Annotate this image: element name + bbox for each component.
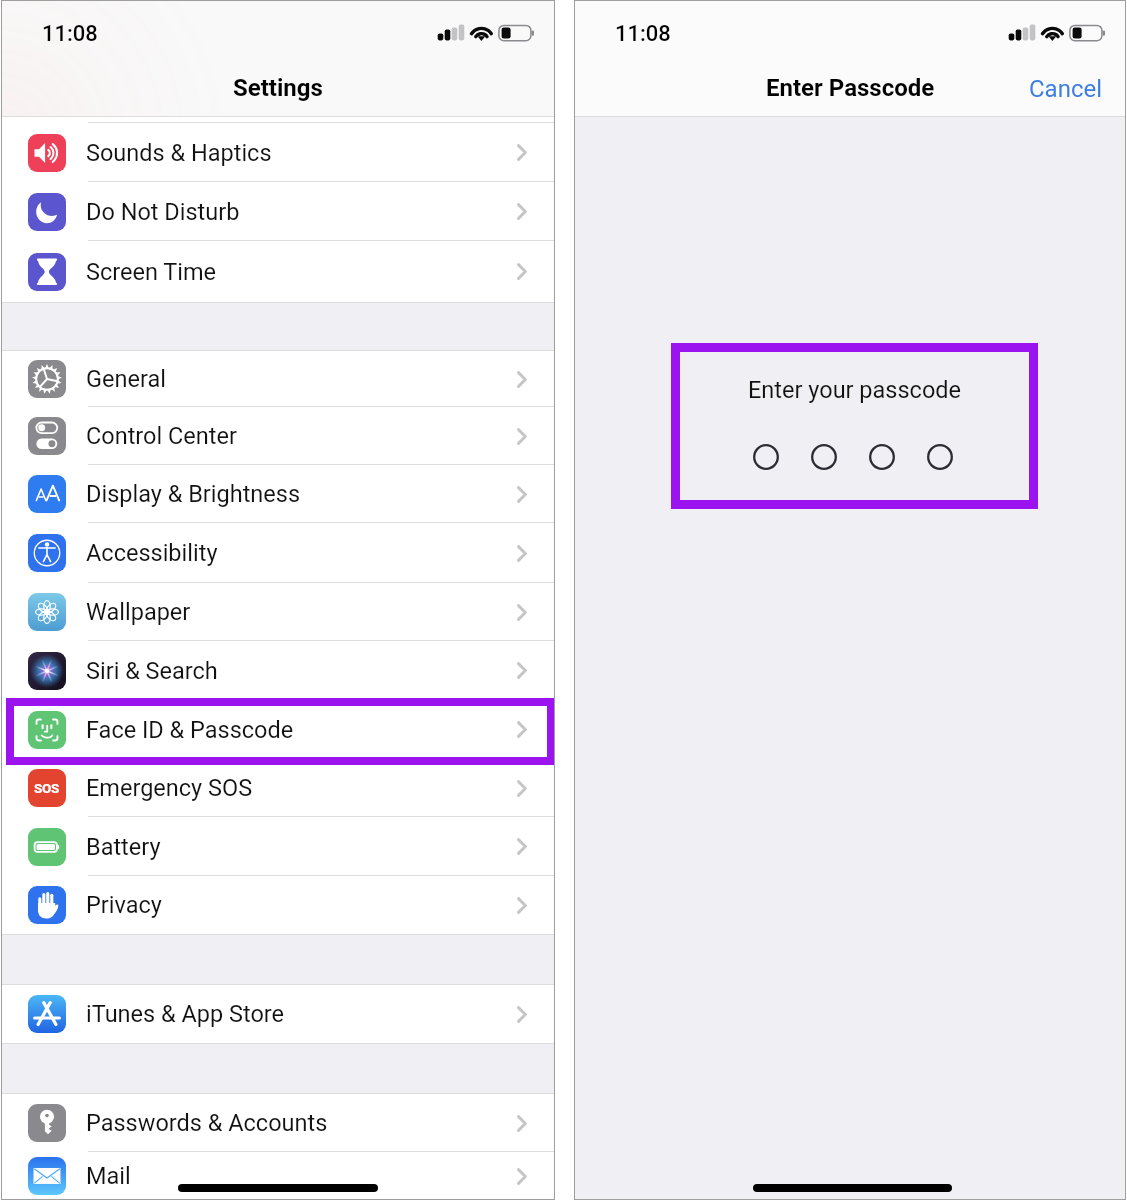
staticText: Display & Brightness <box>86 480 301 508</box>
staticText: Passwords & Accounts <box>86 1109 328 1137</box>
staticText: General <box>86 365 166 393</box>
button[interactable]: Mail <box>1 1152 555 1200</box>
staticText: Cancel <box>1029 75 1103 103</box>
button[interactable]: Wallpaper <box>1 583 555 641</box>
button[interactable]: iTunes & App Store <box>1 985 555 1043</box>
button[interactable]: Control Center <box>1 407 555 465</box>
staticText: SOS <box>34 780 60 796</box>
staticText: Do Not Disturb <box>86 198 240 226</box>
other: Passcode entry field, 4 digits <box>753 444 953 470</box>
staticText: iTunes & App Store <box>86 1000 285 1028</box>
button[interactable]: Cancel <box>1029 75 1103 103</box>
staticText: Enter your passcode <box>748 376 962 404</box>
staticText: Enter Passcode <box>766 74 935 102</box>
button[interactable]: Display & Brightness <box>1 465 555 523</box>
button[interactable]: General <box>1 351 555 407</box>
staticText: Sounds & Haptics <box>86 139 272 167</box>
staticText: Screen Time <box>86 258 217 286</box>
staticText: Face ID & Passcode <box>86 716 294 744</box>
staticText: Mail <box>86 1162 131 1190</box>
button[interactable]: Face ID & Passcode <box>1 700 555 759</box>
staticText: 11:08 <box>42 21 98 47</box>
staticText: Accessibility <box>86 539 218 567</box>
staticText: Privacy <box>86 891 162 919</box>
button[interactable]: Screen Time <box>1 241 555 302</box>
staticText: Emergency SOS <box>86 774 253 802</box>
button[interactable]: Privacy <box>1 876 555 934</box>
staticText: Control Center <box>86 422 237 450</box>
staticText: Settings <box>233 74 323 102</box>
button[interactable]: Sounds & Haptics <box>1 123 555 182</box>
button[interactable]: Passwords & Accounts <box>1 1094 555 1152</box>
button[interactable]: SOS <box>1 759 555 817</box>
staticText: Battery <box>86 833 161 861</box>
staticText: Siri & Search <box>86 657 218 685</box>
button[interactable]: Do Not Disturb <box>1 182 555 241</box>
staticText: Wallpaper <box>86 598 191 626</box>
staticText: 11:08 <box>615 21 671 47</box>
button[interactable]: Siri & Search <box>1 641 555 700</box>
button[interactable]: Battery <box>1 817 555 876</box>
button[interactable]: Accessibility <box>1 523 555 583</box>
